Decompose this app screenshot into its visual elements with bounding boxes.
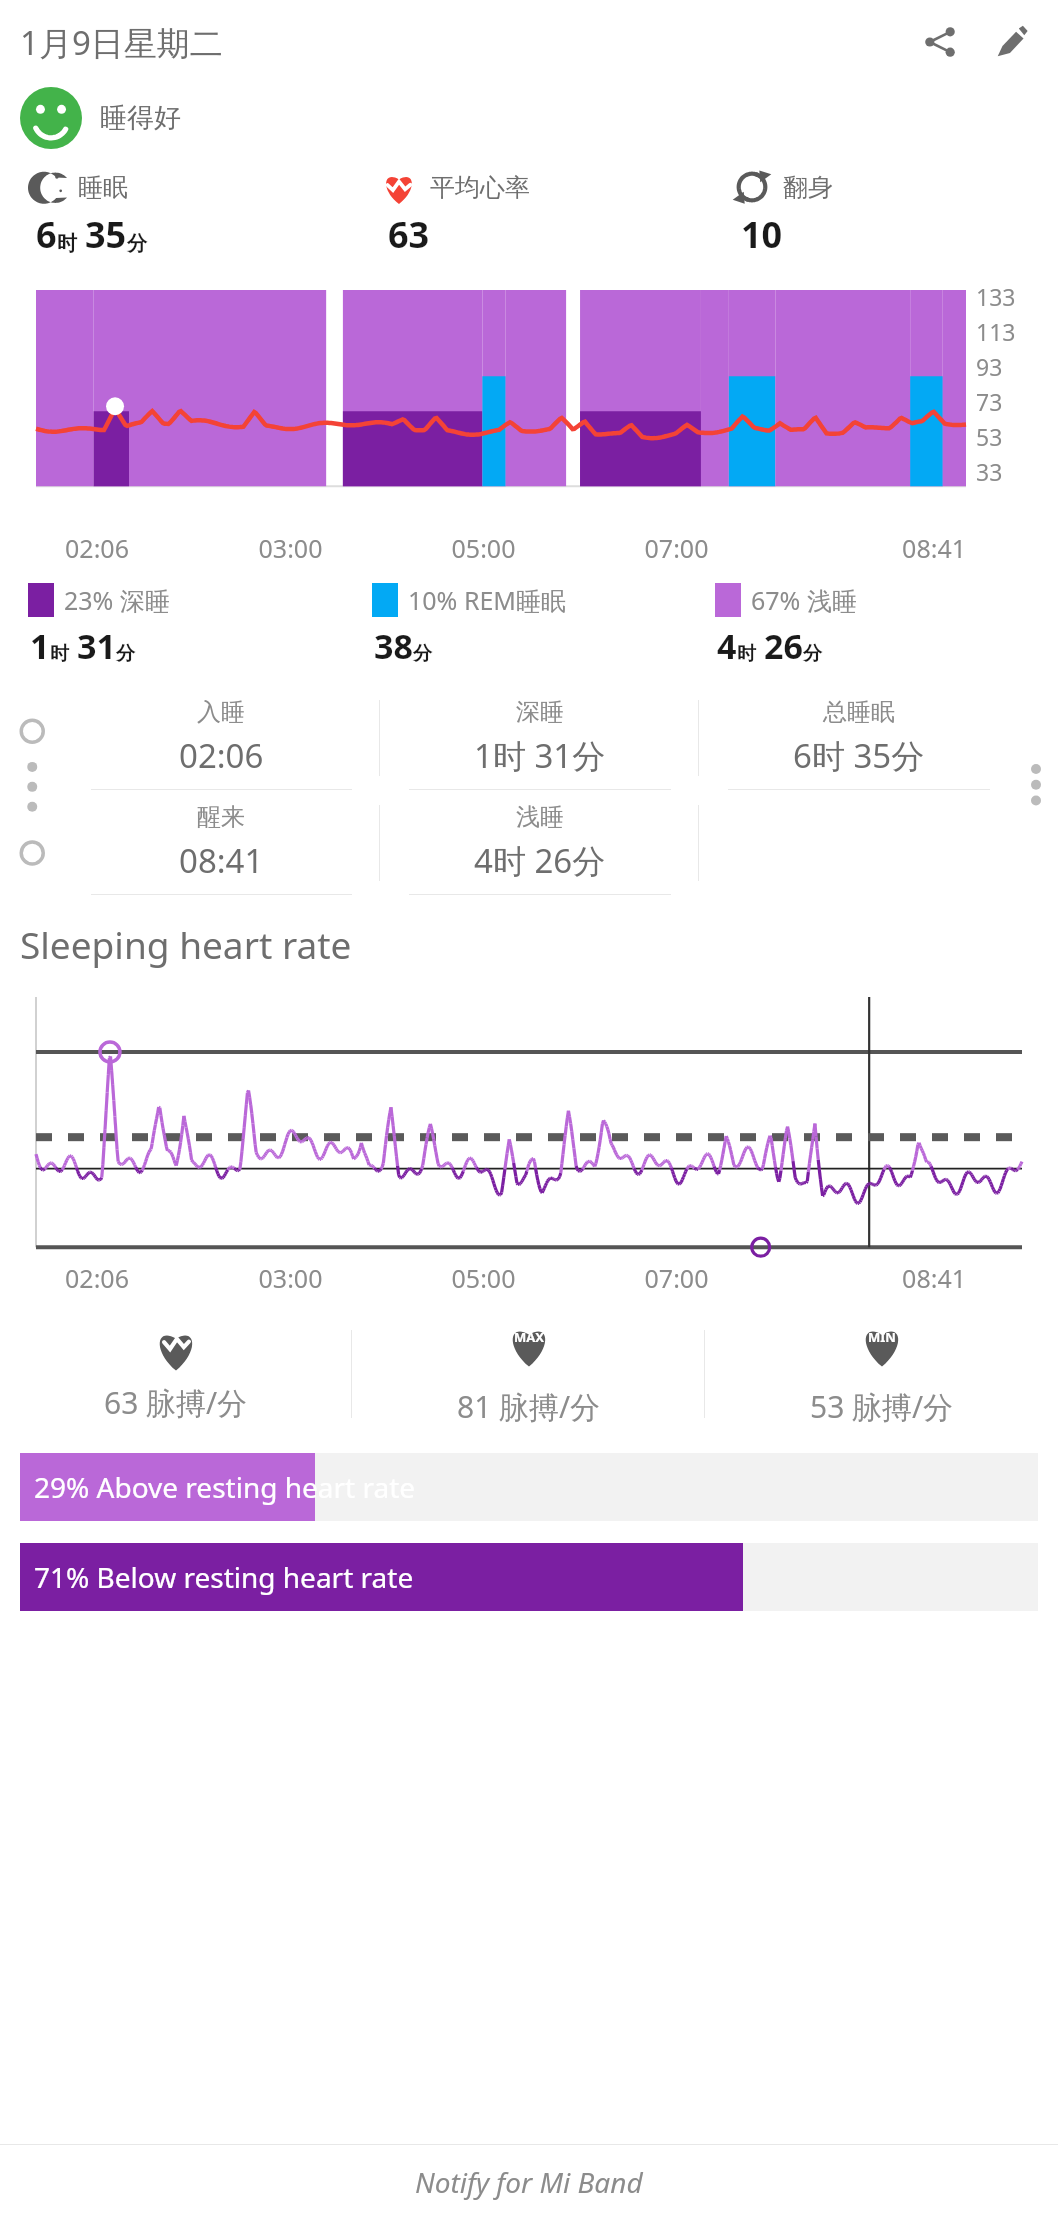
- staticText: 1: [30, 623, 50, 669]
- button[interactable]: Edit: [980, 10, 1044, 74]
- staticText: 6时 35分: [793, 733, 925, 778]
- button[interactable]: 71% Below resting heart rate: [20, 1543, 1038, 1611]
- staticText: 35: [85, 210, 127, 259]
- other: More options: [1018, 685, 1058, 895]
- staticText: 67% 浅睡: [751, 583, 857, 617]
- staticText: Notify for Mi Band: [415, 2163, 643, 2201]
- staticText: 1月9日星期二: [20, 20, 223, 65]
- staticText: 26: [764, 623, 803, 669]
- staticText: 08:41: [179, 838, 264, 883]
- button[interactable]: 翻身: [705, 168, 1058, 259]
- button[interactable]: MAX: [352, 1309, 705, 1439]
- button[interactable]: 10% REM睡眠: [372, 583, 715, 669]
- staticText: 03:00: [194, 531, 387, 565]
- button[interactable]: 平均心率: [352, 168, 705, 259]
- button[interactable]: 深睡: [380, 685, 699, 790]
- staticText: 浅睡: [516, 802, 564, 832]
- staticText: 时: [50, 642, 69, 666]
- button[interactable]: 醒来: [62, 790, 380, 895]
- staticText: 63: [388, 210, 430, 259]
- button[interactable]: 67% 浅睡: [715, 583, 1058, 669]
- staticText: 113: [976, 316, 1016, 347]
- button[interactable]: 29% Above resting heart rate: [20, 1453, 1038, 1521]
- staticText: 63 脉搏/分: [104, 1382, 248, 1423]
- staticText: 4时 26分: [474, 838, 606, 883]
- staticText: 29% Above resting heart rate: [34, 1468, 416, 1506]
- staticText: 1时 31分: [474, 733, 606, 778]
- staticText: 33: [976, 456, 1003, 487]
- staticText: 分: [803, 642, 822, 666]
- staticText: 03:00: [194, 1261, 387, 1295]
- staticText: 入睡: [197, 697, 245, 727]
- staticText: 05:00: [387, 1261, 580, 1295]
- button[interactable]: 63 脉搏/分: [0, 1309, 352, 1439]
- staticText: 53: [976, 421, 1003, 452]
- button[interactable]: 入睡: [62, 685, 380, 790]
- staticText: 08:41: [773, 531, 966, 565]
- staticText: 81 脉搏/分: [457, 1386, 601, 1427]
- button[interactable]: 浅睡: [380, 790, 699, 895]
- button[interactable]: 睡眠: [0, 168, 352, 259]
- staticText: 02:06: [179, 733, 264, 778]
- staticText: 53 脉搏/分: [810, 1386, 954, 1427]
- staticText: 02:06: [0, 531, 194, 565]
- staticText: 93: [976, 351, 1003, 382]
- staticText: 分: [116, 642, 135, 666]
- staticText: 时: [57, 231, 77, 256]
- staticText: 分: [413, 642, 432, 666]
- staticText: 23% 深睡: [64, 583, 170, 617]
- staticText: 时: [737, 642, 756, 666]
- staticText: 133: [976, 281, 1016, 312]
- staticText: 6: [36, 210, 57, 259]
- staticText: 10% REM睡眠: [408, 583, 567, 617]
- staticText: 73: [976, 386, 1003, 417]
- staticText: 睡得好: [100, 101, 181, 135]
- button[interactable]: 总睡眠: [699, 685, 1018, 790]
- staticText: 翻身: [783, 172, 833, 203]
- staticText: 07:00: [580, 531, 773, 565]
- staticText: 醒来: [197, 802, 245, 832]
- staticText: MIN: [868, 1328, 896, 1346]
- staticText: 深睡: [516, 697, 564, 727]
- staticText: 05:00: [387, 531, 580, 565]
- staticText: 71% Below resting heart rate: [34, 1558, 414, 1596]
- staticText: 4: [717, 623, 737, 669]
- staticText: MAX: [514, 1328, 544, 1346]
- button[interactable]: 23% 深睡: [28, 583, 372, 669]
- staticText: 总睡眠: [823, 697, 895, 727]
- button[interactable]: MIN: [705, 1309, 1058, 1439]
- staticText: 02:06: [0, 1261, 194, 1295]
- staticText: 08:41: [773, 1261, 966, 1295]
- staticText: 31: [77, 623, 116, 669]
- staticText: 10: [741, 210, 783, 259]
- staticText: 07:00: [580, 1261, 773, 1295]
- button[interactable]: Share: [908, 10, 972, 74]
- staticText: 38: [374, 623, 413, 669]
- staticText: 平均心率: [430, 172, 530, 203]
- staticText: Sleeping heart rate: [20, 919, 352, 969]
- staticText: 分: [127, 231, 147, 256]
- staticText: 睡眠: [78, 172, 128, 203]
